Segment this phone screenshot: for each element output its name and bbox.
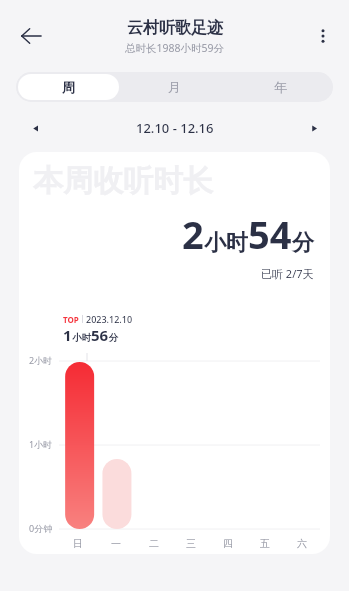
staticText: 分	[292, 229, 314, 257]
staticText: TOP	[63, 314, 79, 325]
staticText: 2	[182, 208, 204, 260]
staticText: 一	[111, 537, 121, 550]
staticText: 1小时	[29, 438, 53, 450]
staticText: 三	[186, 537, 196, 550]
staticText: 四	[223, 537, 233, 550]
staticText: 2023.12.10	[86, 313, 133, 325]
staticText: 分	[109, 332, 119, 344]
button[interactable]: More options	[303, 16, 343, 56]
button[interactable]: 周	[18, 74, 119, 100]
staticText: 云村听歌足迹	[127, 18, 223, 38]
button[interactable]: 月	[123, 74, 225, 100]
staticText: 56	[91, 325, 109, 345]
staticText: 月	[168, 79, 181, 95]
staticText: 六	[297, 537, 307, 550]
staticText: 总时长1988小时59分	[125, 41, 225, 55]
staticText: 本周收听时长	[33, 162, 213, 200]
staticText: 周	[62, 79, 75, 95]
button[interactable]: Previous week	[22, 115, 48, 141]
staticText: 五	[260, 537, 270, 550]
staticText: 日	[73, 537, 83, 550]
staticText: 54	[248, 208, 292, 260]
staticText: 已听 2/7天	[261, 266, 314, 281]
staticText: 0分钟	[29, 522, 53, 534]
staticText: 小时	[204, 229, 248, 257]
staticText: 1	[63, 325, 72, 345]
staticText: 2小时	[29, 354, 53, 366]
staticText: 年	[274, 79, 287, 95]
staticText: 二	[149, 537, 159, 550]
button[interactable]: Next week	[301, 115, 327, 141]
staticText: 小时	[72, 332, 91, 344]
staticText: 12.10 - 12.16	[136, 119, 214, 137]
button[interactable]: Back	[8, 13, 54, 59]
button[interactable]: 本周收听时长	[19, 152, 330, 554]
button[interactable]: 年	[229, 74, 331, 100]
